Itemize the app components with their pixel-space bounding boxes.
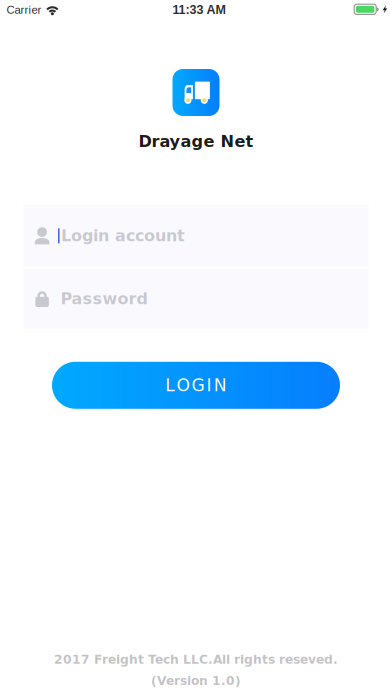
staticText: (Version 1.0) (151, 674, 241, 688)
staticText: Drayage Net (138, 132, 253, 151)
staticText: Password (60, 289, 147, 308)
staticText: Login account (61, 226, 185, 245)
staticText: 2017 Freight Tech LLC.All rights reseved… (54, 652, 338, 667)
staticText: Carrier (7, 4, 42, 16)
button[interactable]: LOGIN (52, 362, 340, 409)
staticText: LOGIN (165, 375, 227, 395)
staticText: 11:33 AM (172, 3, 225, 17)
